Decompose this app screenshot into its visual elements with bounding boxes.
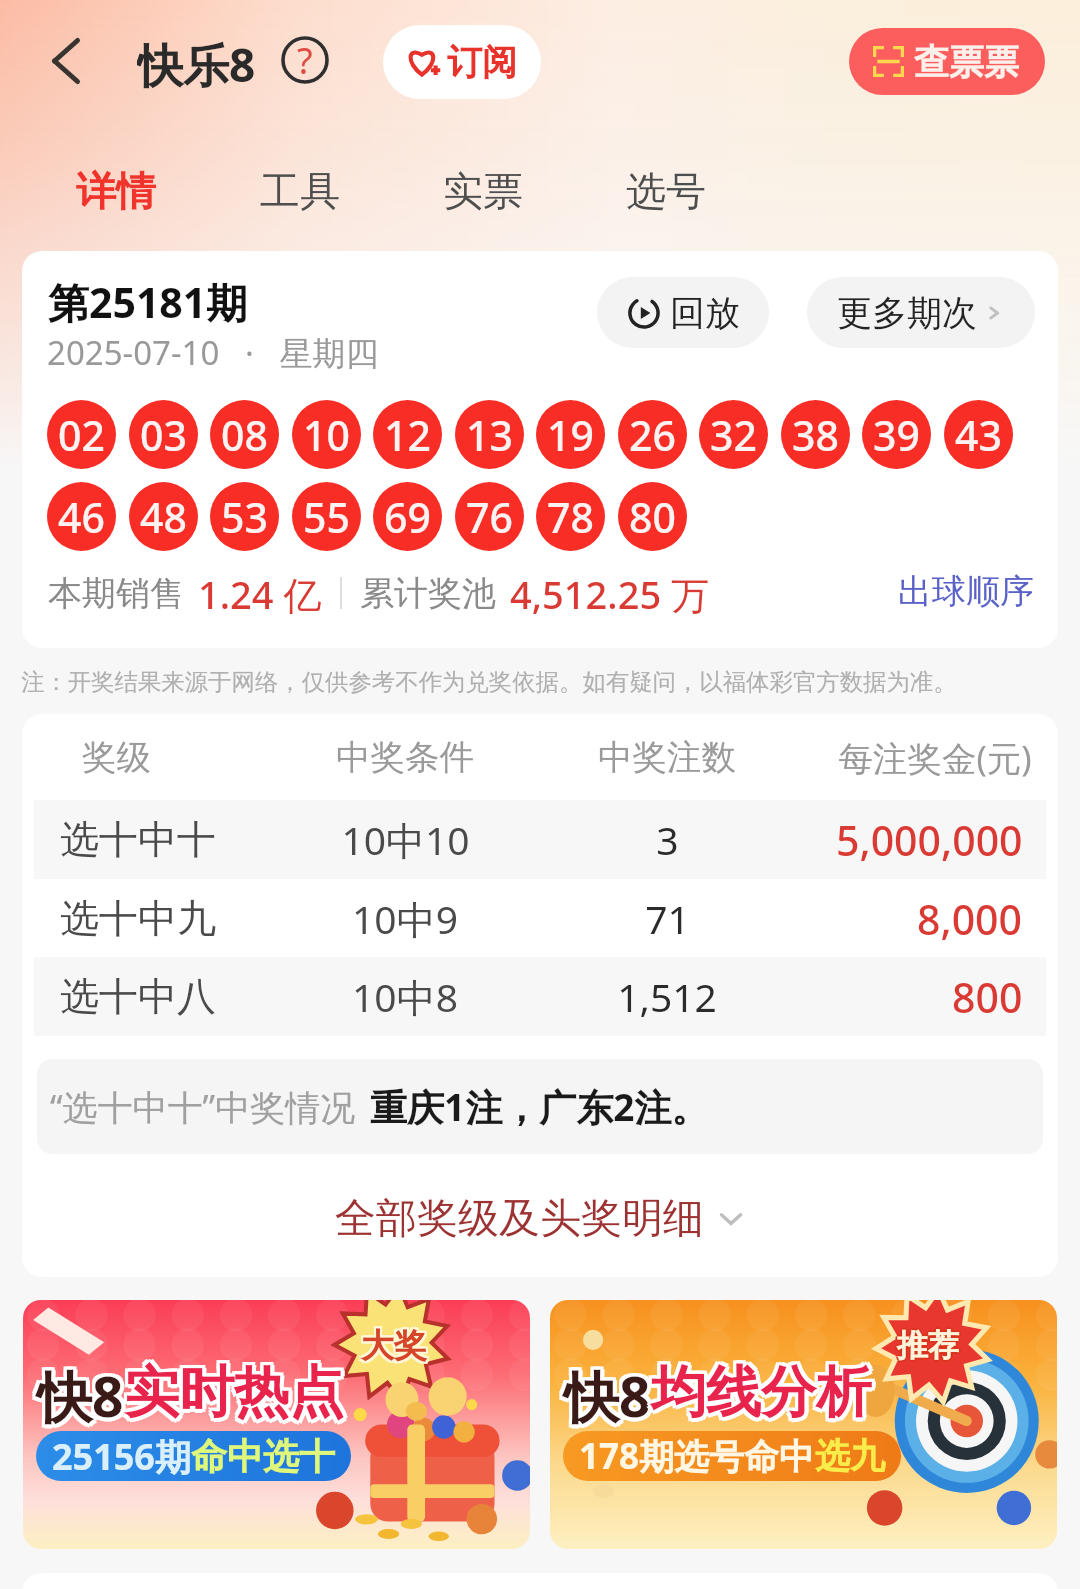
button[interactable]: Back (38, 33, 94, 89)
staticText: 快8 (564, 1358, 651, 1433)
staticText: “选十中十”中奖情况 (50, 1083, 356, 1131)
button[interactable]: 查票票 (849, 28, 1045, 95)
button[interactable]: 选号 (626, 160, 706, 222)
staticText: 选九 (815, 1434, 885, 1478)
staticText: 快8 (37, 1355, 124, 1430)
staticText: 69 (384, 489, 431, 545)
staticText: 累计奖池 (360, 572, 496, 615)
staticText: 10中9 (352, 892, 458, 945)
staticText: 快8 (567, 1355, 654, 1430)
staticText: 均线分析 (654, 1361, 874, 1430)
staticText: 2025-07-10 · 星期四 (47, 330, 379, 375)
staticText: 推荐 (899, 1326, 961, 1365)
staticText: 3 (656, 813, 679, 866)
staticText: 快8 (40, 1361, 127, 1436)
button[interactable]: 详情 (76, 160, 156, 222)
button[interactable]: 实票 (443, 160, 523, 222)
staticText: 快8 (564, 1362, 651, 1437)
staticText: 推荐 (897, 1328, 959, 1367)
staticText: 工具 (260, 166, 340, 216)
staticText: 选十中十 (60, 815, 216, 864)
staticText: 8,000 (917, 891, 1023, 947)
staticText: 快8 (40, 1355, 127, 1430)
staticText: 快8 (34, 1358, 121, 1433)
button[interactable]: 回放 (597, 277, 769, 348)
staticText: 4,512.25 万 (510, 568, 710, 618)
staticText: 每注奖金(元) (838, 734, 1032, 781)
staticText: 08 (221, 407, 268, 463)
staticText: 选号 (626, 166, 706, 216)
staticText: 中奖条件 (336, 736, 474, 779)
staticText: 奖级 (82, 736, 151, 779)
staticText: 快8 (34, 1361, 121, 1436)
button[interactable]: 工具 (260, 160, 340, 222)
staticText: 53 (221, 489, 268, 545)
staticText: 出球顺序 (898, 570, 1034, 613)
staticText: 12 (384, 407, 431, 463)
staticText: 详情 (76, 166, 156, 216)
staticText: 推荐 (897, 1324, 959, 1363)
staticText: 1,512 (617, 970, 717, 1023)
staticText: 实票 (443, 166, 523, 216)
staticText: 实时热点 (121, 1358, 341, 1427)
staticText: 推荐 (898, 1325, 960, 1364)
staticText: 实时热点 (124, 1355, 344, 1424)
staticText: 实时热点 (121, 1361, 341, 1430)
staticText: 中奖注数 (598, 736, 736, 779)
staticText: 大奖 (359, 1323, 425, 1365)
button[interactable]: 更多期次 (807, 277, 1035, 348)
staticText: 800 (952, 969, 1023, 1025)
staticText: 推荐 (897, 1326, 959, 1365)
staticText: 选十中八 (60, 972, 216, 1021)
staticText: 快8 (568, 1358, 655, 1433)
staticText: 46 (58, 489, 105, 545)
staticText: 5,000,000 (836, 812, 1023, 868)
staticText: 10中10 (341, 813, 470, 866)
button[interactable]: 订阅 (383, 25, 541, 99)
staticText: 25156期 (52, 1432, 191, 1481)
staticText: 第25181期 (48, 274, 248, 330)
staticText: 快8 (34, 1355, 121, 1430)
staticText: 快8 (564, 1355, 651, 1430)
staticText: 推荐 (898, 1327, 960, 1366)
staticText: 大奖 (361, 1327, 427, 1369)
staticText: 大奖 (359, 1325, 425, 1367)
staticText: 实时热点 (121, 1355, 341, 1424)
staticText: 大奖 (363, 1327, 429, 1369)
staticText: 回放 (670, 291, 740, 335)
staticText: 19 (547, 407, 594, 463)
staticText: 71 (645, 892, 690, 945)
staticText: 快8 (561, 1355, 648, 1430)
staticText: 178期选号命中 (579, 1432, 815, 1480)
staticText: 26 (629, 407, 676, 463)
staticText: 均线分析 (651, 1355, 871, 1424)
staticText: 注：开奖结果来源于网络，仅供参考不作为兑奖依据。如有疑问，以福体彩官方数据为准。 (21, 667, 957, 696)
staticText: 实时热点 (127, 1355, 347, 1424)
staticText: 1.24 亿 (198, 568, 322, 618)
staticText: 78 (547, 489, 594, 545)
staticText: 32 (710, 407, 757, 463)
staticText: 全部奖级及头奖明细 (335, 1193, 704, 1245)
staticText: 43 (955, 407, 1002, 463)
button[interactable]: Help (281, 36, 329, 84)
staticText: 48 (140, 489, 187, 545)
staticText: 55 (303, 489, 350, 545)
staticText: 命中选 (191, 1434, 299, 1479)
button[interactable]: 大奖 (23, 1300, 530, 1549)
button[interactable]: 推荐 (550, 1300, 1057, 1549)
button[interactable]: 全部奖级及头奖明细 (22, 1169, 1058, 1269)
staticText: 快乐8 (137, 33, 256, 91)
staticText: 十 (299, 1434, 335, 1479)
staticText: 02 (58, 407, 105, 463)
staticText: 重庆1注，广东2注。 (370, 1081, 709, 1132)
staticText: 均线分析 (655, 1358, 875, 1427)
staticText: 查票票 (914, 40, 1019, 84)
staticText: 大奖 (361, 1325, 427, 1367)
button[interactable]: 出球顺序 (898, 566, 1034, 616)
staticText: 大奖 (363, 1323, 429, 1365)
staticText: 实时热点 (124, 1362, 344, 1431)
staticText: 均线分析 (648, 1358, 868, 1427)
staticText: 快8 (561, 1358, 648, 1433)
staticText: 10中8 (352, 970, 458, 1023)
staticText: 选十中九 (60, 894, 216, 943)
